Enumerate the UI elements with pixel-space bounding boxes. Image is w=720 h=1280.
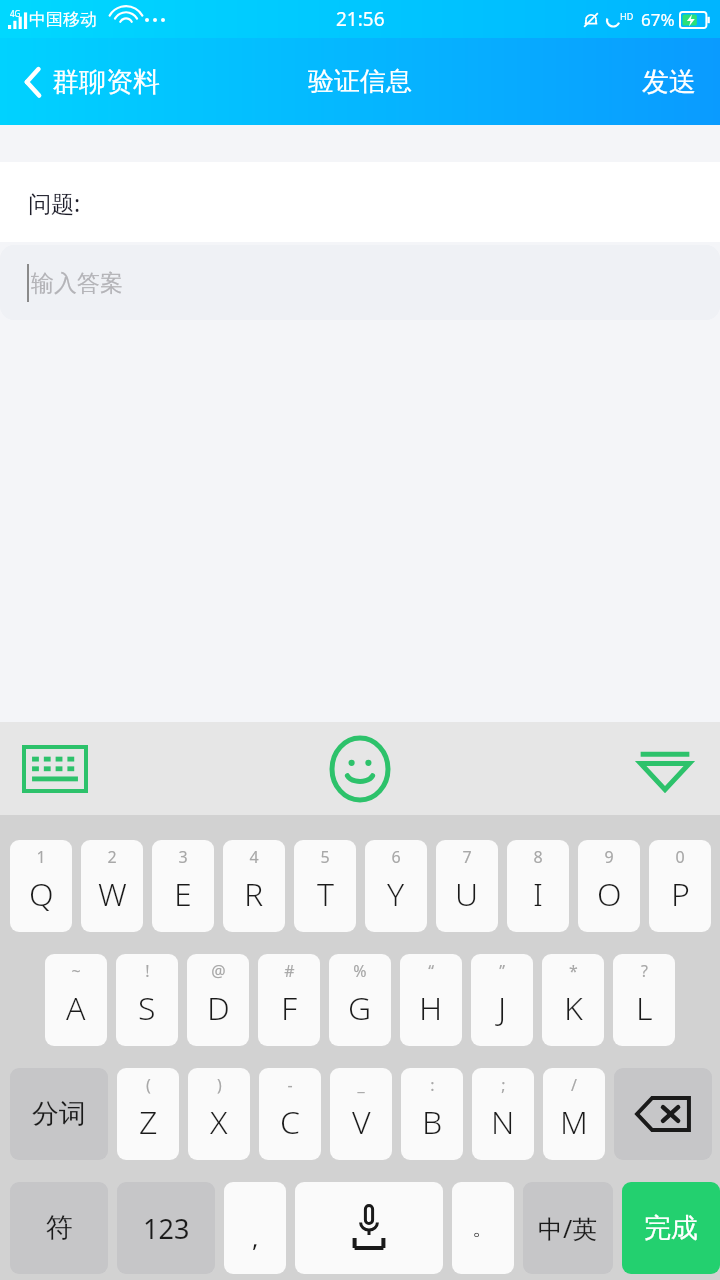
button[interactable]: 3 xyxy=(152,840,214,932)
button[interactable]: 2 xyxy=(81,840,143,932)
staticText: 群聊资料 xyxy=(52,65,160,99)
button[interactable]: % xyxy=(329,954,391,1046)
staticText: X xyxy=(210,1100,228,1144)
staticText: ! xyxy=(145,960,150,982)
staticText: 8 xyxy=(533,846,543,868)
button[interactable]: - xyxy=(259,1068,321,1160)
staticText: 6 xyxy=(391,846,401,868)
button[interactable]: Emoji xyxy=(332,738,388,800)
staticText: 完成 xyxy=(644,1211,698,1245)
staticText: 0 xyxy=(675,846,685,868)
button[interactable]: * xyxy=(542,954,604,1046)
button[interactable]: ; xyxy=(472,1068,534,1160)
staticText: ? xyxy=(641,960,648,982)
staticText: R xyxy=(244,872,264,916)
staticText: / xyxy=(571,1074,577,1096)
staticText: M xyxy=(560,1100,588,1144)
button[interactable]: Backspace xyxy=(614,1068,712,1160)
button[interactable]: / xyxy=(543,1068,605,1160)
button[interactable]: 9 xyxy=(578,840,640,932)
staticText: ) xyxy=(217,1074,222,1096)
staticText: 2 xyxy=(107,846,117,868)
staticText: 1 xyxy=(36,846,46,868)
staticText: ” xyxy=(499,960,505,982)
button[interactable]: 分词 xyxy=(10,1068,108,1160)
button[interactable]: 0 xyxy=(649,840,711,932)
other: Back xyxy=(22,65,44,99)
staticText: # xyxy=(284,960,295,982)
button[interactable]: 输入答案 xyxy=(0,245,720,320)
staticText: 验证信息 xyxy=(308,65,412,98)
staticText: T xyxy=(317,872,334,916)
button[interactable]: “ xyxy=(400,954,462,1046)
staticText: O xyxy=(597,872,622,916)
button[interactable]: 中/英 xyxy=(523,1182,613,1274)
button[interactable]: Back xyxy=(22,65,168,99)
staticText: _ xyxy=(357,1074,365,1096)
staticText: 21:56 xyxy=(336,6,385,32)
staticText: J xyxy=(498,986,507,1030)
staticText: W xyxy=(98,872,127,916)
button[interactable]: 符 xyxy=(10,1182,108,1274)
staticText: 5 xyxy=(320,846,330,868)
staticText: U xyxy=(455,872,479,916)
staticText: 4 xyxy=(249,846,259,868)
staticText: % xyxy=(353,960,367,982)
staticText: S xyxy=(138,986,156,1030)
staticText: “ xyxy=(428,960,434,982)
staticText: E xyxy=(174,872,192,916)
button[interactable]: ~ xyxy=(45,954,107,1046)
staticText: @ xyxy=(211,960,226,982)
button[interactable]: ! xyxy=(116,954,178,1046)
button[interactable]: 发送 xyxy=(618,55,720,109)
button[interactable]: @ xyxy=(187,954,249,1046)
staticText: 。 xyxy=(472,1214,494,1242)
staticText: C xyxy=(280,1100,300,1144)
button[interactable]: 8 xyxy=(507,840,569,932)
staticText: : xyxy=(430,1074,435,1096)
staticText: Z xyxy=(139,1100,158,1144)
button[interactable]: # xyxy=(258,954,320,1046)
staticText: H xyxy=(419,986,443,1030)
staticText: * xyxy=(569,960,578,982)
button[interactable]: ( xyxy=(117,1068,179,1160)
staticText: 3 xyxy=(178,846,188,868)
button[interactable]: 4 xyxy=(223,840,285,932)
button[interactable]: 完成 xyxy=(622,1182,720,1274)
staticText: 4G xyxy=(10,8,21,19)
staticText: 67% xyxy=(641,8,675,31)
button[interactable]: Hide keyboard xyxy=(636,746,694,792)
button[interactable]: 123 xyxy=(117,1182,215,1274)
staticText: P xyxy=(671,872,690,916)
staticText: 123 xyxy=(143,1210,190,1247)
staticText: N xyxy=(491,1100,515,1144)
button[interactable]: ” xyxy=(471,954,533,1046)
button[interactable]: 7 xyxy=(436,840,498,932)
staticText: B xyxy=(422,1100,443,1144)
staticText: 中/英 xyxy=(538,1211,598,1245)
staticText: K xyxy=(564,986,583,1030)
button[interactable]: 。 xyxy=(452,1182,514,1274)
button[interactable]: : xyxy=(401,1068,463,1160)
button[interactable]: 1 xyxy=(10,840,72,932)
staticText: ~ xyxy=(71,960,81,982)
staticText: Q xyxy=(29,872,54,916)
button[interactable]: _ xyxy=(330,1068,392,1160)
staticText: A xyxy=(66,986,86,1030)
button[interactable]: 6 xyxy=(365,840,427,932)
button[interactable]: Keyboard layout xyxy=(24,747,86,791)
staticText: G xyxy=(348,986,372,1030)
staticText: V xyxy=(352,1100,371,1144)
button[interactable]: ) xyxy=(188,1068,250,1160)
button[interactable]: 5 xyxy=(294,840,356,932)
staticText: 9 xyxy=(604,846,614,868)
staticText: I xyxy=(533,872,543,916)
staticText: ( xyxy=(146,1074,151,1096)
staticText: , xyxy=(252,1221,259,1254)
button[interactable]: , xyxy=(224,1182,286,1274)
staticText: Y xyxy=(387,872,405,916)
staticText: 分词 xyxy=(32,1097,86,1131)
button[interactable]: Space / voice input xyxy=(295,1182,443,1274)
button[interactable]: ? xyxy=(613,954,675,1046)
staticText: 中国移动 xyxy=(29,9,97,30)
